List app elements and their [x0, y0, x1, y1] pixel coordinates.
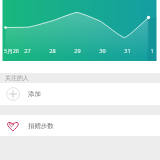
staticText: 27 [24, 47, 31, 54]
button[interactable]: 捐赠步数 [0, 115, 160, 136]
staticText: 28 [49, 47, 56, 54]
staticText: 添加 [28, 90, 41, 98]
button[interactable]: 添加 [0, 83, 160, 105]
staticText: 5月26 [4, 47, 19, 55]
staticText: 29 [74, 47, 81, 54]
staticText: 31 [124, 47, 131, 54]
staticText: 1 [150, 47, 154, 54]
staticText: 30 [99, 47, 106, 54]
staticText: 捐赠步数 [28, 122, 54, 130]
other: 添加 [6, 87, 20, 101]
staticText: 关注的人 [5, 74, 29, 82]
